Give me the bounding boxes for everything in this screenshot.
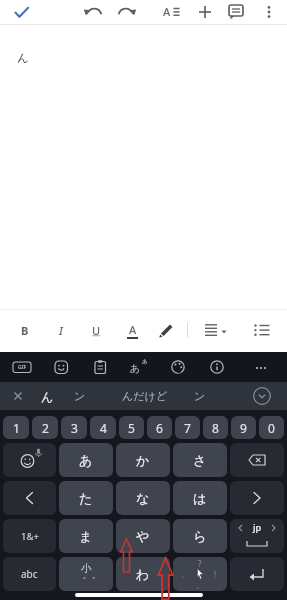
staticText: 6 [156,420,163,436]
button[interactable] [3,443,56,477]
staticText: B [21,323,29,338]
staticText: U [92,323,101,338]
staticText: た [79,490,93,506]
staticText: ! [214,569,217,580]
staticText: 0 [268,420,275,436]
button[interactable]: な [116,481,170,515]
staticText: I [59,323,63,338]
button[interactable]: は [173,481,227,515]
button[interactable]: 7 [175,416,200,439]
button[interactable] [10,0,34,24]
staticText: 1&+ [21,530,39,543]
button[interactable]: 4 [90,416,116,439]
staticText: 5 [128,420,135,436]
button[interactable]: 0 [259,416,284,439]
staticText: や [136,528,150,544]
button[interactable]: か [116,443,170,477]
staticText: ま [79,528,93,544]
staticText: 3 [71,420,78,436]
button[interactable]: A [160,0,184,24]
staticText: ら [193,528,207,544]
staticText: 、 [181,569,189,579]
staticText: さ [193,452,207,468]
button[interactable]: GIF [10,355,34,379]
staticText: GIF [18,364,27,371]
button[interactable]: I [49,318,73,342]
staticText: あ [130,362,141,375]
staticText: 9 [240,420,247,436]
staticText: あ [79,452,93,468]
button[interactable] [49,355,73,379]
button[interactable]: 8 [203,416,228,439]
button[interactable] [257,0,281,24]
staticText: ん [41,389,54,404]
staticText: わ [136,566,150,582]
staticText: んだけど [122,389,168,403]
staticText: ゛゜ [77,575,96,586]
button[interactable]: 小 [59,557,113,591]
staticText: 7 [184,420,191,436]
button[interactable] [230,481,284,515]
button[interactable]: 2 [32,416,58,439]
button[interactable] [88,355,112,379]
button[interactable]: た [59,481,113,515]
button[interactable] [224,0,248,24]
button[interactable]: 6 [147,416,172,439]
button[interactable]: や [116,519,170,553]
button[interactable]: わ [116,557,170,591]
button[interactable] [250,384,274,408]
button[interactable]: B [13,318,37,342]
button[interactable] [166,355,190,379]
staticText: jp [253,521,262,533]
staticText: 2 [42,420,49,436]
button[interactable] [3,481,56,515]
button[interactable]: A [120,318,144,342]
staticText: ン [194,389,206,403]
staticText: abc [21,567,38,581]
button[interactable]: んだけど [118,382,172,410]
button[interactable]: jp [230,519,284,553]
button[interactable]: 5 [119,416,144,439]
button[interactable] [6,384,30,408]
button[interactable]: 9 [231,416,256,439]
staticText: 小 [81,562,92,575]
staticText: は [193,490,207,506]
staticText: ぁ [141,356,149,365]
button[interactable]: 1 [3,416,29,439]
button[interactable] [205,355,229,379]
staticText: 4 [100,420,107,436]
button[interactable] [230,557,284,591]
button[interactable] [249,355,273,379]
button[interactable]: ? [173,557,227,591]
button[interactable] [200,318,230,342]
staticText: 8 [212,420,219,436]
staticText: 1 [13,420,20,436]
button[interactable] [82,0,106,24]
staticText: ? [198,558,202,569]
button[interactable]: ン [186,382,214,410]
button[interactable]: さ [173,443,227,477]
button[interactable]: abc [3,557,56,591]
staticText: 。 [196,580,204,590]
button[interactable] [114,0,138,24]
staticText: A [129,322,137,337]
button[interactable]: 1&+ [3,519,56,553]
button[interactable]: 3 [61,416,87,439]
button[interactable] [250,318,274,342]
button[interactable] [193,0,217,24]
button[interactable]: ン [66,382,94,410]
staticText: ン [74,389,86,403]
staticText: か [136,452,150,468]
button[interactable]: ま [59,519,113,553]
staticText: ん [17,51,29,65]
staticText: A [163,4,171,19]
button[interactable]: ん [34,382,60,410]
button[interactable]: あ [127,355,151,379]
button[interactable]: あ [59,443,113,477]
staticText: な [136,490,150,506]
button[interactable] [230,443,284,477]
button[interactable]: ら [173,519,227,553]
button[interactable] [155,318,179,342]
button[interactable]: U [84,318,108,342]
